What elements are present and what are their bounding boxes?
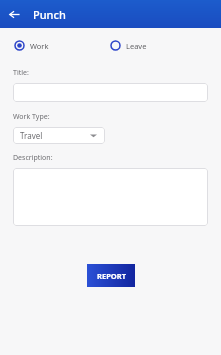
- staticText: Work Type:: [13, 112, 50, 122]
- button[interactable]: Work: [14, 38, 110, 53]
- staticText: Work: [30, 41, 49, 51]
- button[interactable]: Travel: [13, 127, 105, 144]
- button[interactable]: REPORT: [87, 264, 135, 287]
- button[interactable]: [13, 168, 208, 226]
- staticText: Punch: [33, 7, 66, 22]
- staticText: Title:: [13, 68, 29, 78]
- staticText: Leave: [126, 41, 147, 51]
- staticText: REPORT: [97, 271, 126, 281]
- button[interactable]: Back: [4, 4, 25, 25]
- button[interactable]: Leave: [110, 38, 147, 53]
- staticText: Travel: [20, 130, 43, 141]
- button[interactable]: [13, 83, 208, 102]
- staticText: Description:: [13, 153, 53, 163]
